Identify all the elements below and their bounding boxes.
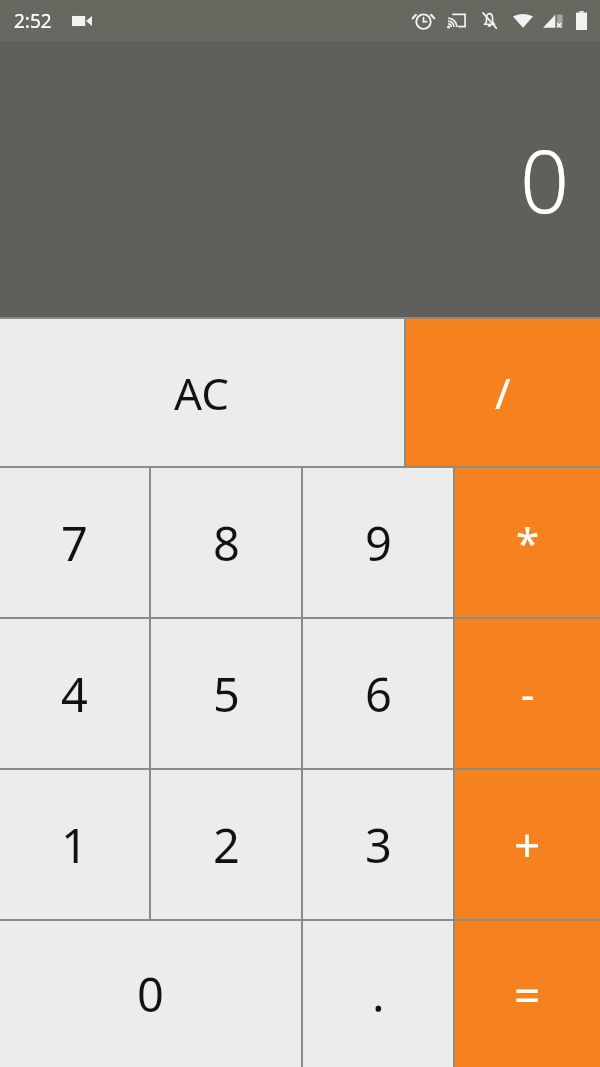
staticText: AC: [174, 363, 230, 423]
button[interactable]: /: [406, 319, 600, 466]
button[interactable]: +: [455, 770, 600, 919]
staticText: 0: [520, 121, 570, 238]
button[interactable]: *: [455, 468, 600, 617]
button[interactable]: 2: [151, 770, 301, 919]
staticText: 0: [137, 962, 164, 1026]
staticText: 1: [61, 813, 88, 877]
staticText: 9: [365, 511, 392, 575]
button[interactable]: 6: [303, 619, 453, 768]
button[interactable]: AC: [0, 319, 404, 466]
staticText: -: [521, 665, 535, 722]
staticText: /: [495, 364, 511, 421]
other: Notifications muted: [480, 11, 499, 30]
button[interactable]: =: [455, 921, 600, 1067]
staticText: +: [514, 813, 541, 876]
staticText: 3: [365, 813, 392, 877]
button[interactable]: 8: [151, 468, 301, 617]
button[interactable]: -: [455, 619, 600, 768]
button[interactable]: 3: [303, 770, 453, 919]
staticText: 6: [365, 662, 392, 726]
button[interactable]: 5: [151, 619, 301, 768]
staticText: 2:52: [14, 8, 52, 34]
button[interactable]: 1: [0, 770, 149, 919]
button[interactable]: 4: [0, 619, 149, 768]
staticText: 2: [213, 813, 240, 877]
staticText: 4: [61, 662, 88, 726]
button[interactable]: 9: [303, 468, 453, 617]
staticText: .: [372, 962, 385, 1026]
staticText: 8: [213, 511, 240, 575]
staticText: *: [516, 514, 540, 571]
staticText: 7: [61, 511, 88, 575]
button[interactable]: 0: [0, 921, 301, 1067]
button[interactable]: 7: [0, 468, 149, 617]
button[interactable]: .: [303, 921, 453, 1067]
staticText: 5: [213, 662, 240, 726]
staticText: =: [514, 963, 541, 1026]
